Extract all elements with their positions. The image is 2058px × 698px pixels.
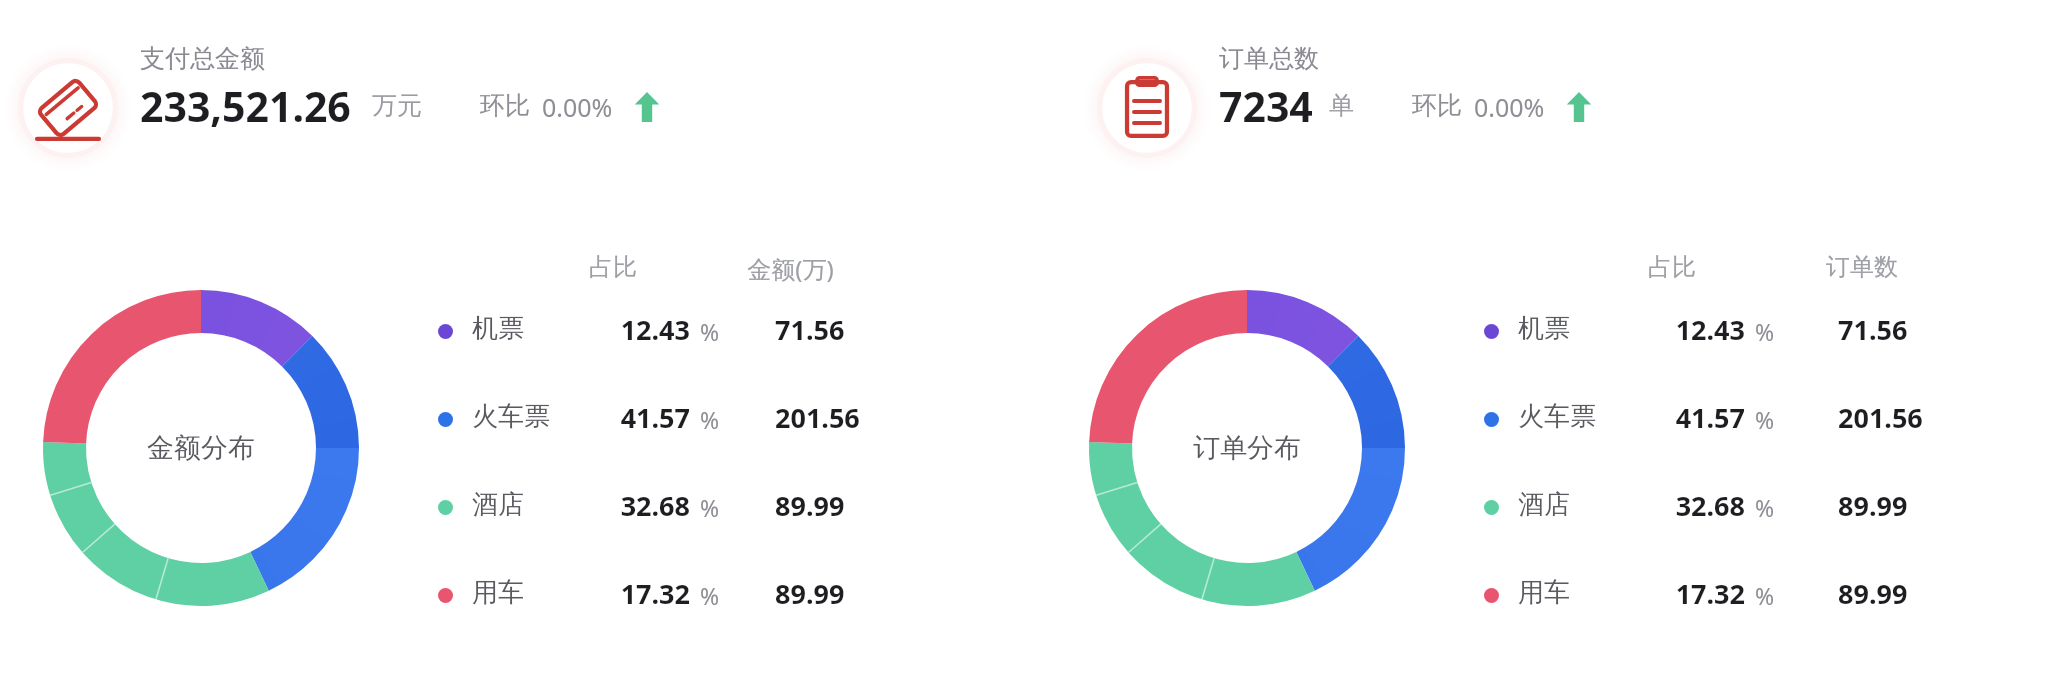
staticText: 订单总数	[1219, 43, 1319, 74]
staticText: %	[1755, 316, 1775, 347]
staticText: 占比	[589, 252, 637, 282]
staticText: 订单分布	[1193, 431, 1301, 465]
staticText: 环比	[1412, 90, 1462, 121]
button[interactable]	[1477, 392, 1907, 444]
staticText: %	[1755, 580, 1775, 611]
staticText: 订单数	[1826, 252, 1898, 282]
staticText: 机票	[1518, 312, 1570, 345]
staticText: %	[700, 404, 720, 435]
button[interactable]	[431, 304, 861, 356]
staticText: 12.43	[620, 311, 690, 348]
staticText: 单	[1329, 90, 1354, 121]
button[interactable]	[431, 392, 861, 444]
staticText: 火车票	[1518, 400, 1596, 433]
staticText: 41.57	[1675, 399, 1745, 436]
staticText: 酒店	[472, 488, 524, 521]
staticText: 89.99	[1838, 575, 1908, 612]
staticText: 酒店	[1518, 488, 1570, 521]
staticText: 233,521.26	[140, 78, 351, 134]
staticText: 金额分布	[147, 431, 255, 465]
staticText: 0.00%	[1474, 90, 1545, 124]
staticText: 用车	[472, 576, 524, 609]
staticText: 0.00%	[542, 90, 613, 124]
staticText: 89.99	[775, 487, 845, 524]
staticText: %	[1755, 404, 1775, 435]
staticText: %	[700, 316, 720, 347]
staticText: 201.56	[775, 399, 860, 436]
staticText: 17.32	[620, 575, 690, 612]
staticText: 机票	[472, 312, 524, 345]
staticText: 201.56	[1838, 399, 1923, 436]
staticText: 金额(万)	[747, 252, 834, 285]
staticText: 71.56	[775, 311, 845, 348]
staticText: 71.56	[1838, 311, 1908, 348]
staticText: 支付总金额	[140, 43, 265, 74]
staticText: 占比	[1648, 252, 1696, 282]
staticText: 89.99	[1838, 487, 1908, 524]
staticText: 用车	[1518, 576, 1570, 609]
button[interactable]	[1477, 568, 1907, 620]
staticText: %	[700, 580, 720, 611]
staticText: 41.57	[620, 399, 690, 436]
staticText: 万元	[372, 90, 422, 121]
button[interactable]	[1477, 304, 1907, 356]
staticText: 7234	[1219, 78, 1313, 134]
staticText: 环比	[480, 90, 530, 121]
button[interactable]	[1477, 480, 1907, 532]
staticText: %	[1755, 492, 1775, 523]
staticText: 32.68	[1675, 487, 1745, 524]
staticText: 12.43	[1675, 311, 1745, 348]
staticText: 17.32	[1675, 575, 1745, 612]
button[interactable]: 订单分布	[1089, 290, 1405, 606]
button[interactable]: 订单总数	[1083, 44, 1211, 172]
staticText: 32.68	[620, 487, 690, 524]
button[interactable]: 支付总金额	[4, 44, 132, 172]
staticText: 火车票	[472, 400, 550, 433]
staticText: %	[700, 492, 720, 523]
button[interactable]	[431, 480, 861, 532]
button[interactable]	[431, 568, 861, 620]
staticText: 89.99	[775, 575, 845, 612]
button[interactable]: 金额分布	[43, 290, 359, 606]
